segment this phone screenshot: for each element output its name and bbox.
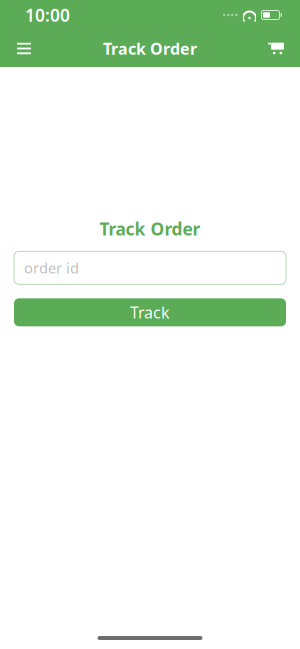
staticText: Track Order [99,217,200,240]
staticText: 10:00 [25,3,70,26]
button[interactable]: Cart [261,33,291,63]
staticText: Track Order [103,38,197,59]
button[interactable]: Track [14,298,286,326]
button[interactable]: Menu [9,33,39,63]
staticText: order id [24,258,79,278]
staticText: Track [130,302,170,323]
